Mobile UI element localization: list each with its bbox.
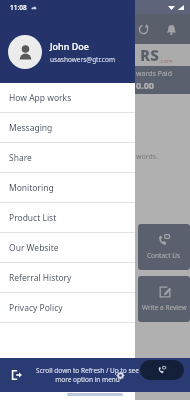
button[interactable]: How App works (0, 83, 135, 112)
button[interactable]: Call (140, 360, 184, 380)
button[interactable]: Privacy Policy (0, 293, 135, 322)
staticText: Privacy Policy (9, 302, 63, 314)
staticText: Share (9, 152, 32, 164)
staticText: Our Website (9, 242, 59, 254)
button[interactable]: Product List (0, 203, 135, 232)
staticText: usashowers@gtr.com (50, 55, 115, 64)
button[interactable]: Write a Review (138, 276, 190, 322)
button[interactable]: John Doe (8, 35, 115, 69)
staticText: Messaging (9, 122, 53, 134)
staticText: words. (136, 152, 159, 162)
button[interactable]: Messaging (0, 113, 135, 142)
button[interactable]: Our Website (0, 233, 135, 262)
button[interactable]: Referral History (0, 263, 135, 292)
button[interactable]: Logout (6, 364, 28, 386)
staticText: Scroll down to Refresh / Up to see more … (36, 366, 139, 384)
button[interactable]: Monitoring (0, 173, 135, 202)
staticText: Contact Us (147, 251, 181, 260)
staticText: Monitoring (9, 182, 54, 194)
button[interactable]: Refresh (132, 18, 154, 40)
button[interactable]: Settings (108, 363, 132, 387)
staticText: Write a Review (142, 303, 187, 312)
button[interactable]: Notifications (160, 18, 182, 40)
staticText: 0.00 (136, 79, 154, 91)
staticText: .com (159, 57, 173, 65)
staticText: Referral History (9, 272, 72, 284)
button[interactable]: Contact Us (138, 224, 190, 270)
button[interactable]: Share (0, 143, 135, 172)
staticText: Product List (9, 212, 57, 224)
staticText: 11:08 (10, 3, 27, 12)
staticText: RS (140, 45, 159, 65)
staticText: wards Paid (136, 69, 172, 79)
staticText: How App works (9, 92, 72, 104)
staticText: John Doe (50, 40, 89, 52)
